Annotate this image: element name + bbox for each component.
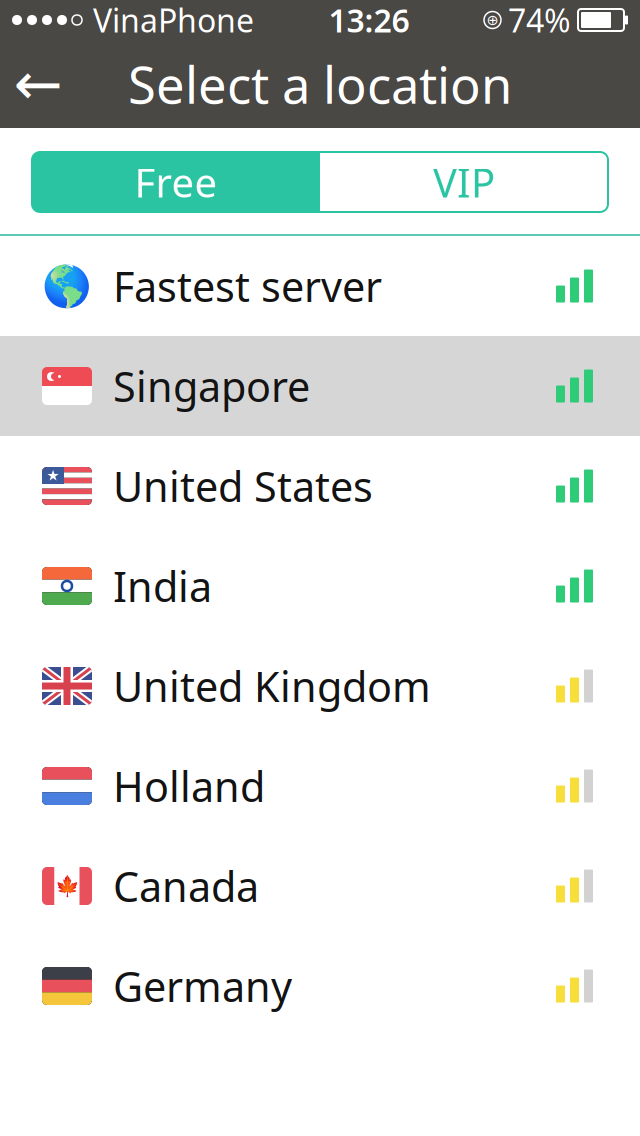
staticText: Free bbox=[134, 155, 217, 208]
button[interactable]: Free bbox=[32, 152, 320, 212]
staticText: ← bbox=[13, 51, 62, 117]
button[interactable]: 🌎 bbox=[0, 236, 640, 336]
staticText: Singapore bbox=[113, 359, 310, 413]
staticText: ★ bbox=[46, 467, 59, 484]
staticText: United States bbox=[113, 459, 373, 513]
staticText: VIP bbox=[433, 155, 495, 208]
staticText: Canada bbox=[113, 859, 259, 913]
button[interactable]: 🍁 bbox=[0, 836, 640, 936]
staticText: Select a location bbox=[128, 50, 512, 118]
staticText: VinaPhone bbox=[93, 0, 254, 41]
staticText: Germany bbox=[113, 959, 292, 1013]
staticText: India bbox=[113, 559, 212, 613]
button[interactable]: United Kingdom bbox=[0, 636, 640, 736]
staticText: ⊕ bbox=[486, 12, 498, 28]
staticText: 13:26 bbox=[328, 0, 409, 41]
staticText: United Kingdom bbox=[113, 659, 431, 713]
staticText: 74% bbox=[508, 0, 571, 41]
staticText: Fastest server bbox=[113, 259, 382, 313]
staticText: 🌎 bbox=[42, 263, 92, 309]
button[interactable]: Singapore bbox=[0, 336, 640, 436]
button[interactable]: VIP bbox=[320, 152, 608, 212]
button[interactable]: Back bbox=[0, 40, 76, 128]
staticText: Holland bbox=[113, 759, 265, 813]
button[interactable]: ★ bbox=[0, 436, 640, 536]
button[interactable]: Germany bbox=[0, 936, 640, 1036]
button[interactable]: Holland bbox=[0, 736, 640, 836]
button[interactable]: India bbox=[0, 536, 640, 636]
staticText: 🍁 bbox=[54, 875, 79, 897]
